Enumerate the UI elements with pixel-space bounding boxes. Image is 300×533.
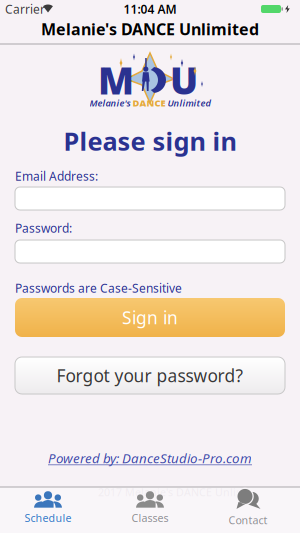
staticText: Contact xyxy=(228,513,267,527)
button[interactable]: Sign in xyxy=(15,298,285,337)
button[interactable]: Contact xyxy=(198,485,298,531)
staticText: Schedule xyxy=(24,511,71,525)
staticText: Melanie's DANCE Unlimited xyxy=(41,18,259,40)
staticText: Password: xyxy=(15,220,72,236)
staticText: Sign in xyxy=(122,306,178,329)
staticText: Melanie's xyxy=(89,97,130,109)
staticText: Passwords are Case-Sensitive xyxy=(15,280,182,296)
staticText: Powered by: DanceStudio-Pro.com xyxy=(48,449,252,467)
staticText: M xyxy=(98,55,134,105)
staticText: 11:04 AM xyxy=(123,1,176,17)
button[interactable]: Classes xyxy=(100,485,200,531)
button[interactable] xyxy=(15,187,285,210)
button[interactable] xyxy=(15,240,285,263)
staticText: Email Address: xyxy=(15,168,98,184)
staticText: U xyxy=(170,55,198,105)
button[interactable]: Forgot your password? xyxy=(15,357,285,394)
staticText: 2017 Melanie's DANCE Unlim xyxy=(98,485,246,499)
button[interactable]: Schedule xyxy=(0,485,98,531)
staticText: Classes xyxy=(131,511,168,525)
staticText: Please sign in xyxy=(63,124,236,158)
staticText: Unlimited xyxy=(167,97,210,109)
staticText: Forgot your password? xyxy=(56,364,243,387)
button[interactable]: Powered by: DanceStudio-Pro.com xyxy=(48,449,252,467)
staticText: Carrier xyxy=(5,1,45,17)
staticText: DANCE xyxy=(132,97,165,109)
